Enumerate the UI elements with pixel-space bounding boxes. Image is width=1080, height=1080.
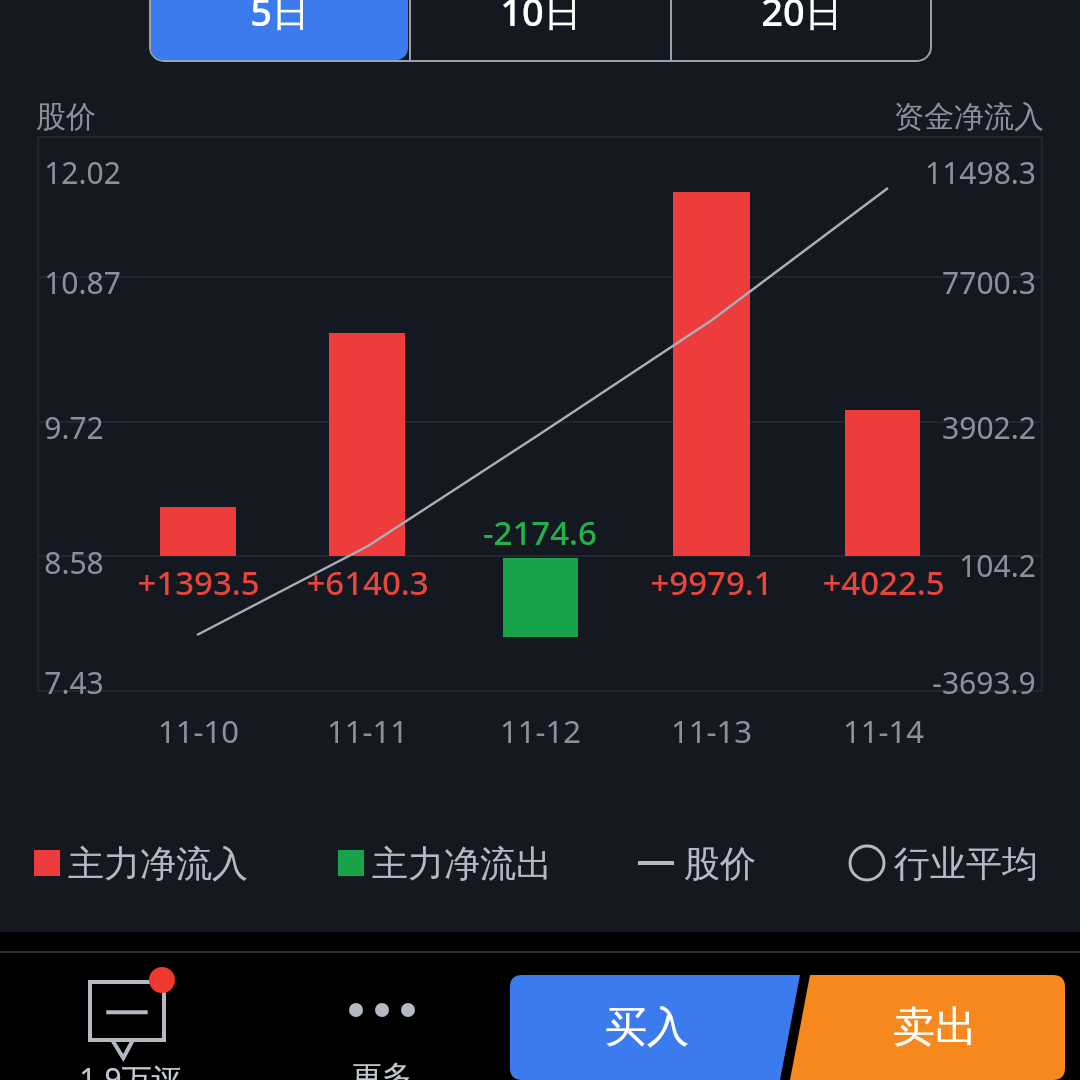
staticText: +9979.1 (650, 560, 773, 605)
staticText: +4022.5 (822, 560, 945, 605)
button[interactable]: 行业平均 (848, 832, 1038, 894)
staticText: -2174.6 (483, 510, 597, 555)
staticText: 11-13 (671, 710, 752, 752)
staticText: -3693.9 (932, 662, 1036, 703)
staticText: 行业平均 (894, 841, 1038, 886)
staticText: 更多 (352, 1058, 412, 1080)
staticText: 资金净流入 (894, 98, 1044, 136)
button[interactable]: 主力净流入 (34, 832, 248, 894)
staticText: 104.2 (959, 545, 1036, 586)
staticText: 1.9万评 (79, 1058, 182, 1080)
staticText: +6140.3 (306, 560, 429, 605)
staticText: +1393.5 (137, 560, 260, 605)
staticText: 7700.3 (942, 262, 1036, 303)
staticText: 9.72 (44, 407, 104, 448)
button[interactable]: 5日 (151, 0, 408, 60)
button[interactable]: 1.9万评 (48, 972, 212, 1080)
button[interactable]: 主力净流出 (338, 832, 552, 894)
staticText: 买入 (605, 1001, 689, 1054)
staticText: 5日 (250, 0, 310, 37)
staticText: 股价 (36, 98, 96, 136)
staticText: 10.87 (44, 262, 121, 303)
staticText: 11-12 (500, 710, 581, 752)
staticText: 12.02 (44, 152, 121, 193)
staticText: 7.43 (44, 662, 104, 703)
staticText: 主力净流入 (68, 841, 248, 886)
staticText: 主力净流出 (372, 841, 552, 886)
button[interactable]: 卖出 (790, 975, 1065, 1080)
button[interactable]: 股价 (638, 832, 756, 894)
staticText: 8.58 (44, 542, 104, 583)
button[interactable]: 20日 (673, 0, 930, 60)
staticText: 11-10 (158, 710, 239, 752)
staticText: 11-11 (327, 710, 408, 752)
staticText: 11498.3 (925, 152, 1036, 193)
staticText: 11-14 (843, 710, 924, 752)
button[interactable]: 买入 (510, 975, 800, 1080)
staticText: 3902.2 (942, 407, 1036, 448)
button[interactable]: 10日 (412, 0, 669, 60)
staticText: 20日 (761, 0, 843, 37)
staticText: 股价 (684, 841, 756, 886)
staticText: 10日 (500, 0, 582, 37)
button[interactable]: 更多 (300, 972, 464, 1080)
staticText: 卖出 (893, 1001, 977, 1054)
